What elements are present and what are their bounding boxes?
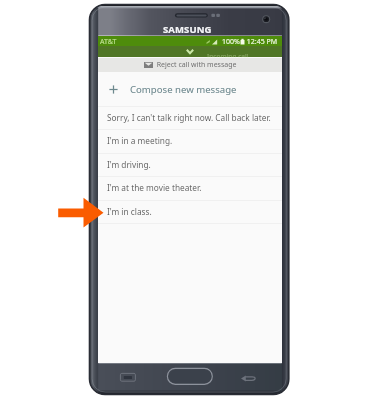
button[interactable]: Reject call with message — [98, 58, 282, 72]
staticText: I'm in class. — [107, 206, 152, 217]
staticText: Incoming call — [207, 52, 249, 61]
staticText: 100% — [222, 37, 240, 47]
button[interactable]: I'm at the movie theater. — [98, 176, 282, 199]
button[interactable]: I'm in class. — [98, 200, 282, 223]
staticText: I'm driving. — [107, 159, 151, 170]
button[interactable]: Compose new message — [98, 72, 282, 106]
staticText: AT&T — [100, 37, 117, 47]
button[interactable]: I'm in a meeting. — [98, 129, 282, 152]
staticText: I'm at the movie theater. — [107, 182, 202, 193]
staticText: Compose new message — [130, 83, 237, 96]
button[interactable]: Sorry, I can't talk right now. Call back… — [98, 106, 282, 129]
staticText: Sorry, I can't talk right now. Call back… — [107, 112, 271, 123]
staticText: 12:45 PM — [245, 37, 278, 47]
staticText: I'm in a meeting. — [107, 135, 173, 146]
button[interactable]: I'm driving. — [98, 153, 282, 176]
staticText: SAMSUNG — [163, 23, 212, 36]
staticText: Reject call with message — [153, 60, 237, 70]
